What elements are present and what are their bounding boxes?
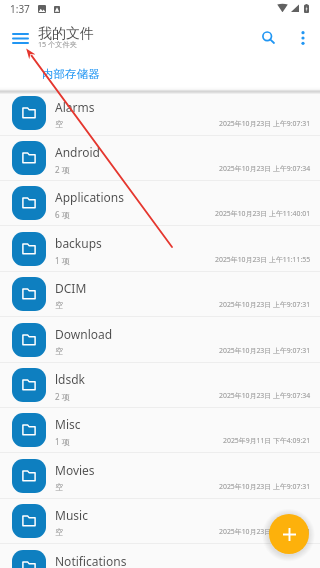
staticText: Android <box>55 144 100 160</box>
button[interactable]: Alarms <box>0 91 320 136</box>
staticText: Applications <box>55 189 124 205</box>
button[interactable]: Search <box>252 22 284 54</box>
staticText: 2 项 <box>55 164 70 175</box>
staticText: 1:37 <box>10 2 30 16</box>
staticText: 15 个文件夹 <box>38 39 77 49</box>
button[interactable]: ldsdk <box>0 363 320 408</box>
staticText: 2025年10月23日 上午11:40:01 <box>215 209 311 218</box>
staticText: 6 项 <box>55 209 70 220</box>
button[interactable]: Movies <box>0 454 320 499</box>
staticText: ldsdk <box>55 371 86 387</box>
button[interactable]: Music <box>0 499 320 544</box>
staticText: 空 <box>55 346 63 356</box>
staticText: Movies <box>55 462 95 478</box>
staticText: 2025年10月23日 上午9:07:31 <box>219 346 311 355</box>
button[interactable]: Android <box>0 136 320 181</box>
button[interactable]: Navigation menu <box>6 24 34 52</box>
staticText: 2025年10月23日 上午9:07:34 <box>219 391 311 400</box>
staticText: 2025年10月23日 上午9:07:31 <box>219 119 311 128</box>
staticText: 空 <box>55 482 63 492</box>
staticText: Misc <box>55 416 81 432</box>
staticText: 2 项 <box>55 391 70 402</box>
button[interactable]: DCIM <box>0 272 320 317</box>
button[interactable]: More options <box>287 22 319 54</box>
button[interactable]: Download <box>0 318 320 363</box>
staticText: Download <box>55 326 113 342</box>
staticText: 2025年10月23日 上午9:07:31 <box>219 300 311 309</box>
button[interactable]: Notifications <box>0 545 320 568</box>
staticText: Music <box>55 507 88 523</box>
button[interactable]: backups <box>0 227 320 272</box>
staticText: 内部存储器 <box>42 67 100 81</box>
button[interactable]: Applications <box>0 181 320 226</box>
staticText: 空 <box>55 119 63 129</box>
staticText: 2025年9月11日 下午4:09:21 <box>223 436 311 445</box>
staticText: 2025年10月23日 上午9:07:34 <box>219 164 311 173</box>
button[interactable]: 内部存储器 <box>42 67 100 81</box>
staticText: 空 <box>55 527 63 537</box>
staticText: DCIM <box>55 280 87 296</box>
staticText: 1 项 <box>55 436 70 447</box>
staticText: 空 <box>55 300 63 310</box>
staticText: 我的文件 <box>38 25 94 43</box>
staticText: Alarms <box>55 99 95 115</box>
button[interactable]: Misc <box>0 408 320 453</box>
staticText: backups <box>55 235 102 251</box>
staticText: Notifications <box>55 553 127 568</box>
staticText: 2025年10月23日 上午9:07:31 <box>219 527 311 536</box>
button[interactable]: Add <box>269 514 309 554</box>
staticText: 2025年10月23日 上午11:11:55 <box>215 255 311 264</box>
staticText: 2025年10月23日 上午9:07:31 <box>219 482 311 491</box>
staticText: 1 项 <box>55 255 70 266</box>
